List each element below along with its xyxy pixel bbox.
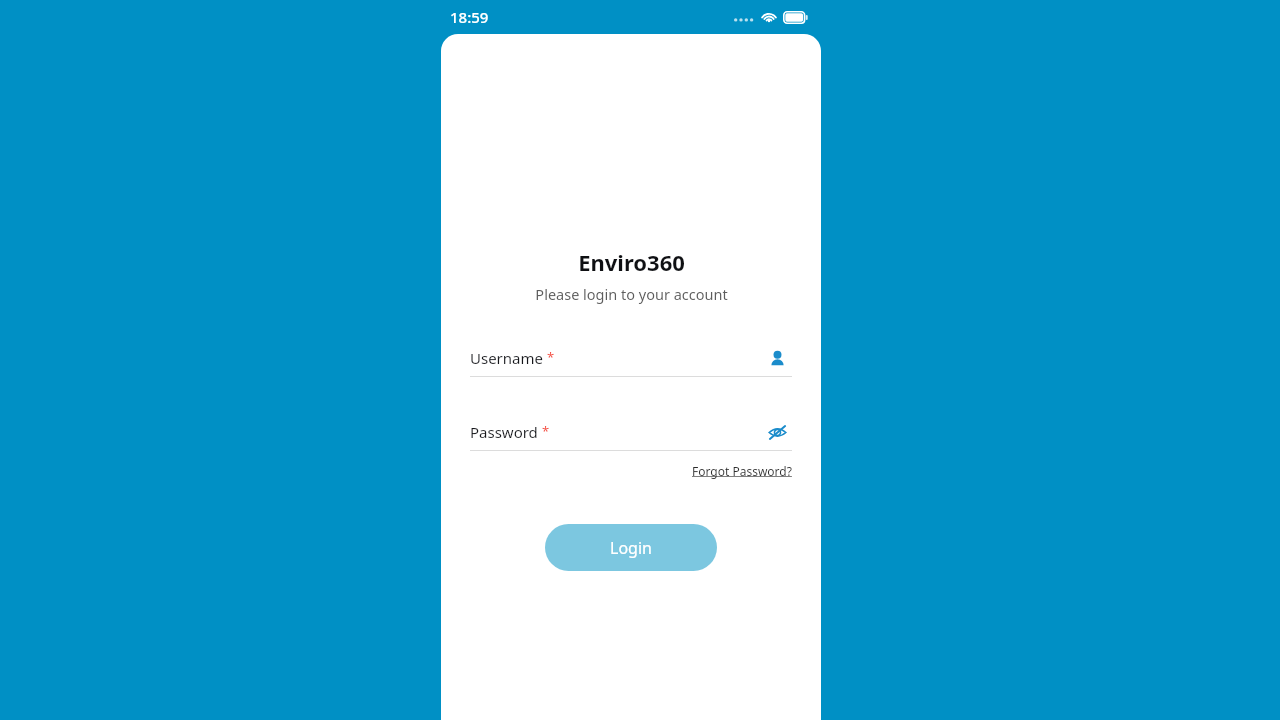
button[interactable]: Username (762, 343, 792, 373)
staticText: Password (470, 422, 538, 442)
staticText: Enviro360 (578, 247, 685, 277)
staticText: * (547, 348, 555, 366)
button[interactable]: Login (545, 524, 717, 571)
staticText: Please login to your account (535, 284, 728, 304)
staticText: Login (610, 537, 652, 559)
staticText: 18:59 (450, 7, 489, 27)
staticText: Forgot Password? (692, 463, 792, 479)
staticText: * (542, 422, 550, 440)
button[interactable]: Show password (762, 417, 792, 447)
button[interactable]: Forgot Password? (692, 461, 792, 481)
staticText: Username (470, 348, 543, 368)
